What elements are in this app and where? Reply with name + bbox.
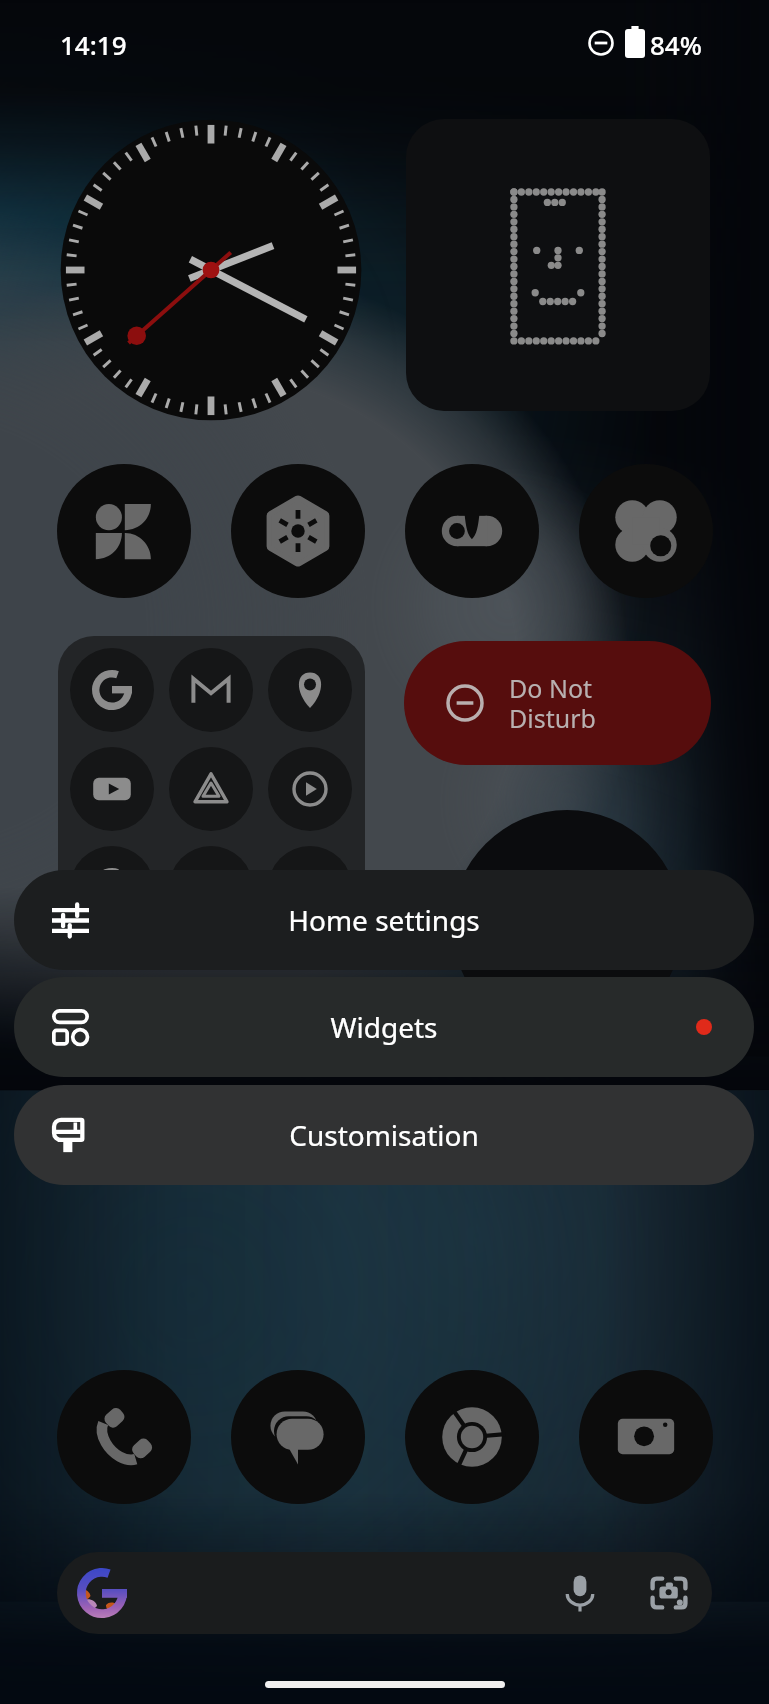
button[interactable] xyxy=(579,464,713,598)
button[interactable] xyxy=(169,648,253,732)
button[interactable] xyxy=(169,747,253,831)
staticText: Customisation xyxy=(289,1116,479,1154)
button[interactable] xyxy=(57,1370,191,1504)
button[interactable] xyxy=(57,464,191,598)
button[interactable]: Voice search xyxy=(57,1552,712,1634)
button[interactable] xyxy=(231,464,365,598)
button[interactable]: Customisation xyxy=(14,1085,754,1185)
button[interactable]: Voice search xyxy=(551,1552,609,1634)
button[interactable] xyxy=(268,846,352,930)
button[interactable] xyxy=(231,1370,365,1504)
button[interactable] xyxy=(169,846,253,930)
button[interactable] xyxy=(70,648,154,732)
button[interactable]: Google Lens xyxy=(640,1552,698,1634)
staticText: Home settings xyxy=(288,901,480,939)
button[interactable]: Home settings xyxy=(14,870,754,970)
button[interactable] xyxy=(58,636,365,936)
staticText: 14:19 xyxy=(60,27,127,62)
button[interactable]: Do Not Disturb xyxy=(404,641,711,765)
button[interactable] xyxy=(70,846,154,930)
button[interactable] xyxy=(405,1370,539,1504)
button[interactable]: Widgets xyxy=(14,977,754,1077)
button[interactable] xyxy=(70,747,154,831)
button[interactable] xyxy=(405,464,539,598)
staticText: Widgets xyxy=(330,1008,438,1046)
button[interactable] xyxy=(268,648,352,732)
staticText: 84% xyxy=(650,27,702,62)
button[interactable] xyxy=(268,747,352,831)
button[interactable] xyxy=(406,119,710,411)
staticText: Do Not Disturb xyxy=(509,671,596,735)
button[interactable] xyxy=(579,1370,713,1504)
